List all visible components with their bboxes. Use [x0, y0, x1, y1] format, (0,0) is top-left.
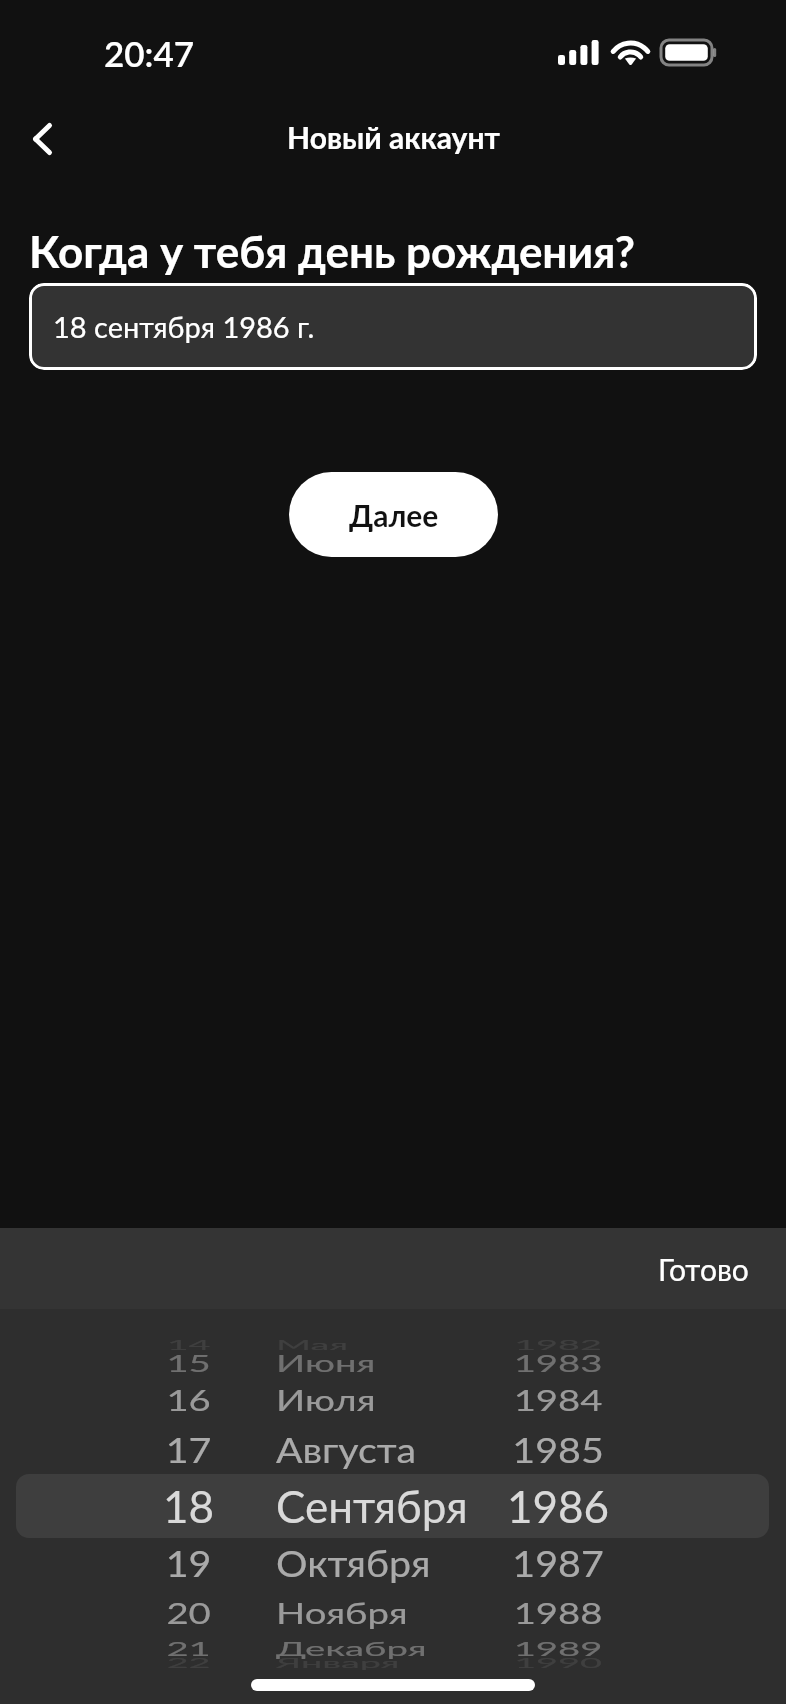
staticText: Июля: [276, 1383, 376, 1418]
staticText: 1984: [514, 1383, 603, 1418]
staticText: Декабря: [276, 1636, 427, 1660]
staticText: Октября: [276, 1542, 431, 1585]
staticText: 18 сентября 1986 г.: [53, 309, 315, 344]
staticText: 21: [166, 1636, 212, 1660]
button[interactable]: Назад: [6, 103, 78, 175]
staticText: 1989: [514, 1636, 603, 1660]
staticText: 1982: [514, 1337, 603, 1353]
staticText: 14: [167, 1337, 211, 1353]
staticText: 1987: [512, 1542, 605, 1585]
staticText: Ноября: [276, 1596, 408, 1631]
staticText: Далее: [349, 497, 439, 533]
staticText: 17: [166, 1428, 212, 1471]
staticText: 18: [163, 1480, 215, 1533]
staticText: 20: [166, 1596, 212, 1631]
staticText: 15: [166, 1349, 212, 1378]
button[interactable]: Далее: [289, 472, 498, 557]
staticText: 16: [166, 1383, 212, 1418]
staticText: 20:47: [104, 32, 195, 74]
staticText: 1983: [514, 1349, 603, 1378]
staticText: 19: [166, 1542, 212, 1585]
staticText: Января: [276, 1655, 400, 1671]
staticText: 22: [167, 1655, 211, 1671]
button[interactable]: Готово: [639, 1239, 768, 1299]
staticText: Августа: [276, 1428, 416, 1471]
staticText: 1985: [512, 1428, 605, 1471]
staticText: 1986: [507, 1480, 610, 1533]
staticText: Июня: [276, 1349, 376, 1378]
button[interactable]: 18 сентября 1986 г.: [29, 283, 757, 370]
staticText: Новый аккаунт: [287, 119, 500, 155]
staticText: Готово: [658, 1251, 749, 1287]
staticText: Сентября: [276, 1480, 468, 1533]
staticText: 1988: [514, 1596, 603, 1631]
staticText: Когда у тебя день рождения?: [29, 225, 636, 278]
staticText: 1990: [514, 1655, 603, 1671]
staticText: Мая: [276, 1337, 348, 1353]
